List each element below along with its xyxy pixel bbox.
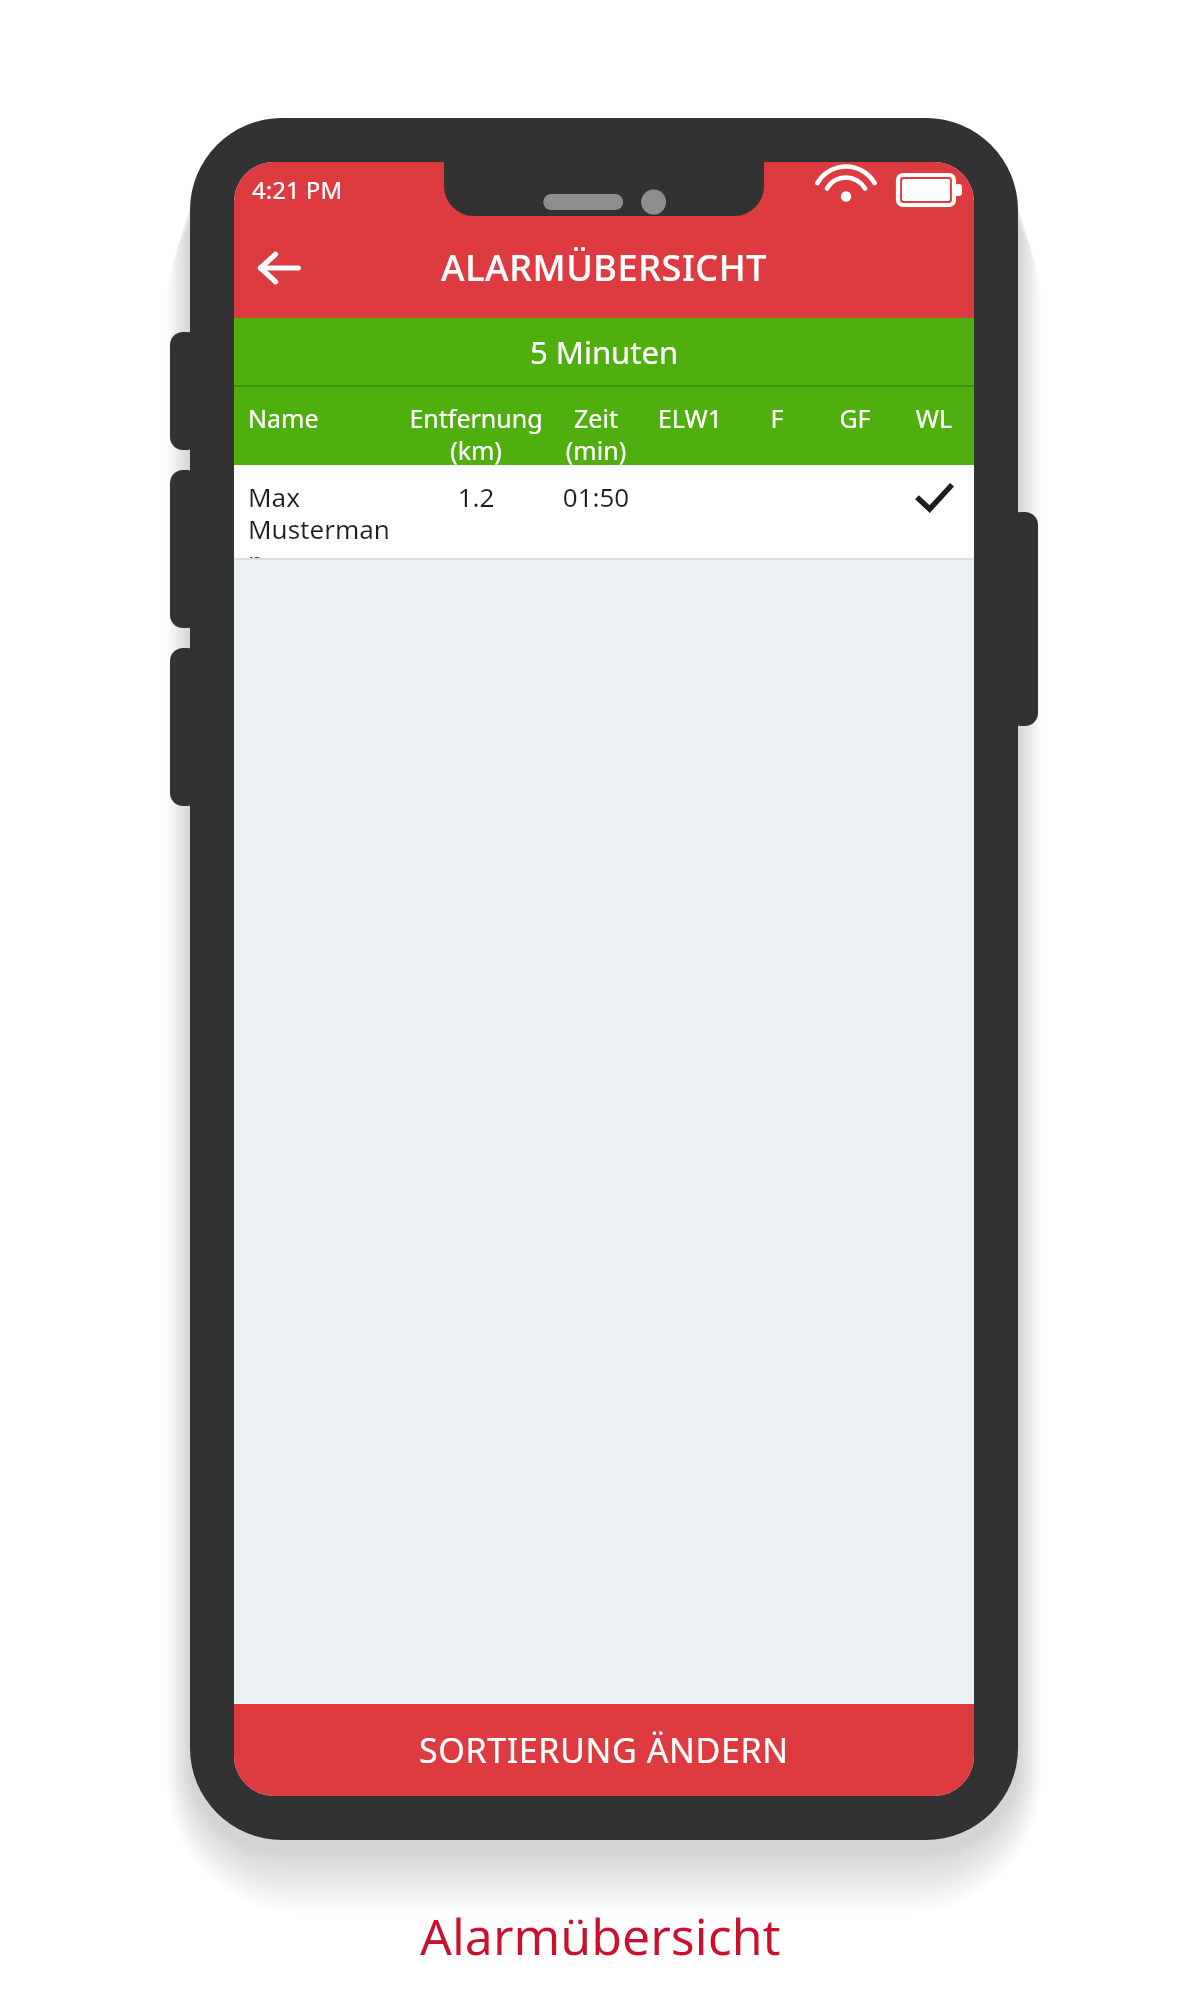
staticText: SORTIERUNG ÄNDERN bbox=[419, 1727, 789, 1773]
staticText: Alarmübersicht bbox=[420, 1902, 781, 1970]
button[interactable]: Max Mustermann bbox=[234, 465, 974, 558]
staticText: F bbox=[738, 401, 816, 435]
staticText: Name bbox=[248, 401, 402, 435]
staticText: Max Mustermann bbox=[248, 479, 402, 558]
button[interactable]: 5 Minuten bbox=[234, 318, 974, 385]
staticText: 01:50 bbox=[550, 479, 642, 514]
staticText: 1.2 bbox=[402, 479, 550, 514]
button[interactable]: SORTIERUNG ÄNDERN bbox=[234, 1704, 974, 1796]
staticText: 4:21 PM bbox=[252, 173, 343, 206]
staticText: Zeit (min) bbox=[550, 401, 642, 465]
staticText: Entfernung (km) bbox=[402, 401, 550, 465]
button[interactable]: Back bbox=[242, 231, 316, 305]
staticText: ALARMÜBERSICHT bbox=[441, 243, 768, 292]
staticText: 5 Minuten bbox=[530, 331, 679, 373]
staticText: ELW1 bbox=[642, 401, 738, 435]
staticText: GF bbox=[816, 401, 894, 435]
staticText: WL bbox=[894, 401, 974, 435]
